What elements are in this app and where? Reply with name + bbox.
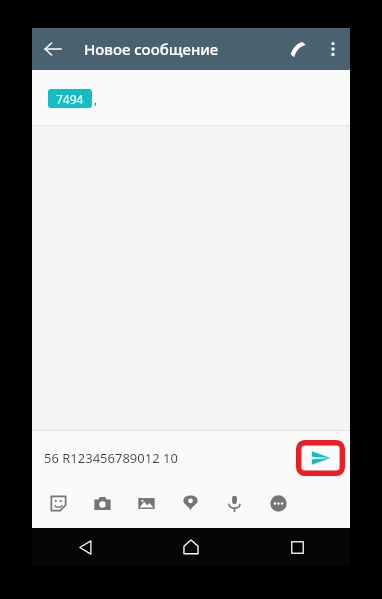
staticText: 7494 [56,91,84,107]
button[interactable]: Местоположение [174,487,206,519]
staticText: 56 R123456789012 10 [44,449,178,467]
button[interactable]: Главный экран [138,528,244,566]
button[interactable]: 7494 [32,70,350,126]
button[interactable]: Камера [86,487,118,519]
button[interactable]: 56 R123456789012 10 [32,430,350,486]
button[interactable]: Изображение [130,487,162,519]
button[interactable]: Ещё [316,32,350,66]
staticText: , [94,91,98,107]
button[interactable]: Последние приложения [244,528,350,566]
button[interactable]: Позвонить [278,30,316,68]
button[interactable]: Ещё [262,487,294,519]
button[interactable]: Голос [218,487,250,519]
button[interactable]: Отправить [296,440,345,476]
button[interactable]: Назад [32,28,74,70]
button[interactable]: Назад [32,528,138,566]
button[interactable]: Стикер [42,487,74,519]
staticText: Новое сообщение [84,39,219,59]
